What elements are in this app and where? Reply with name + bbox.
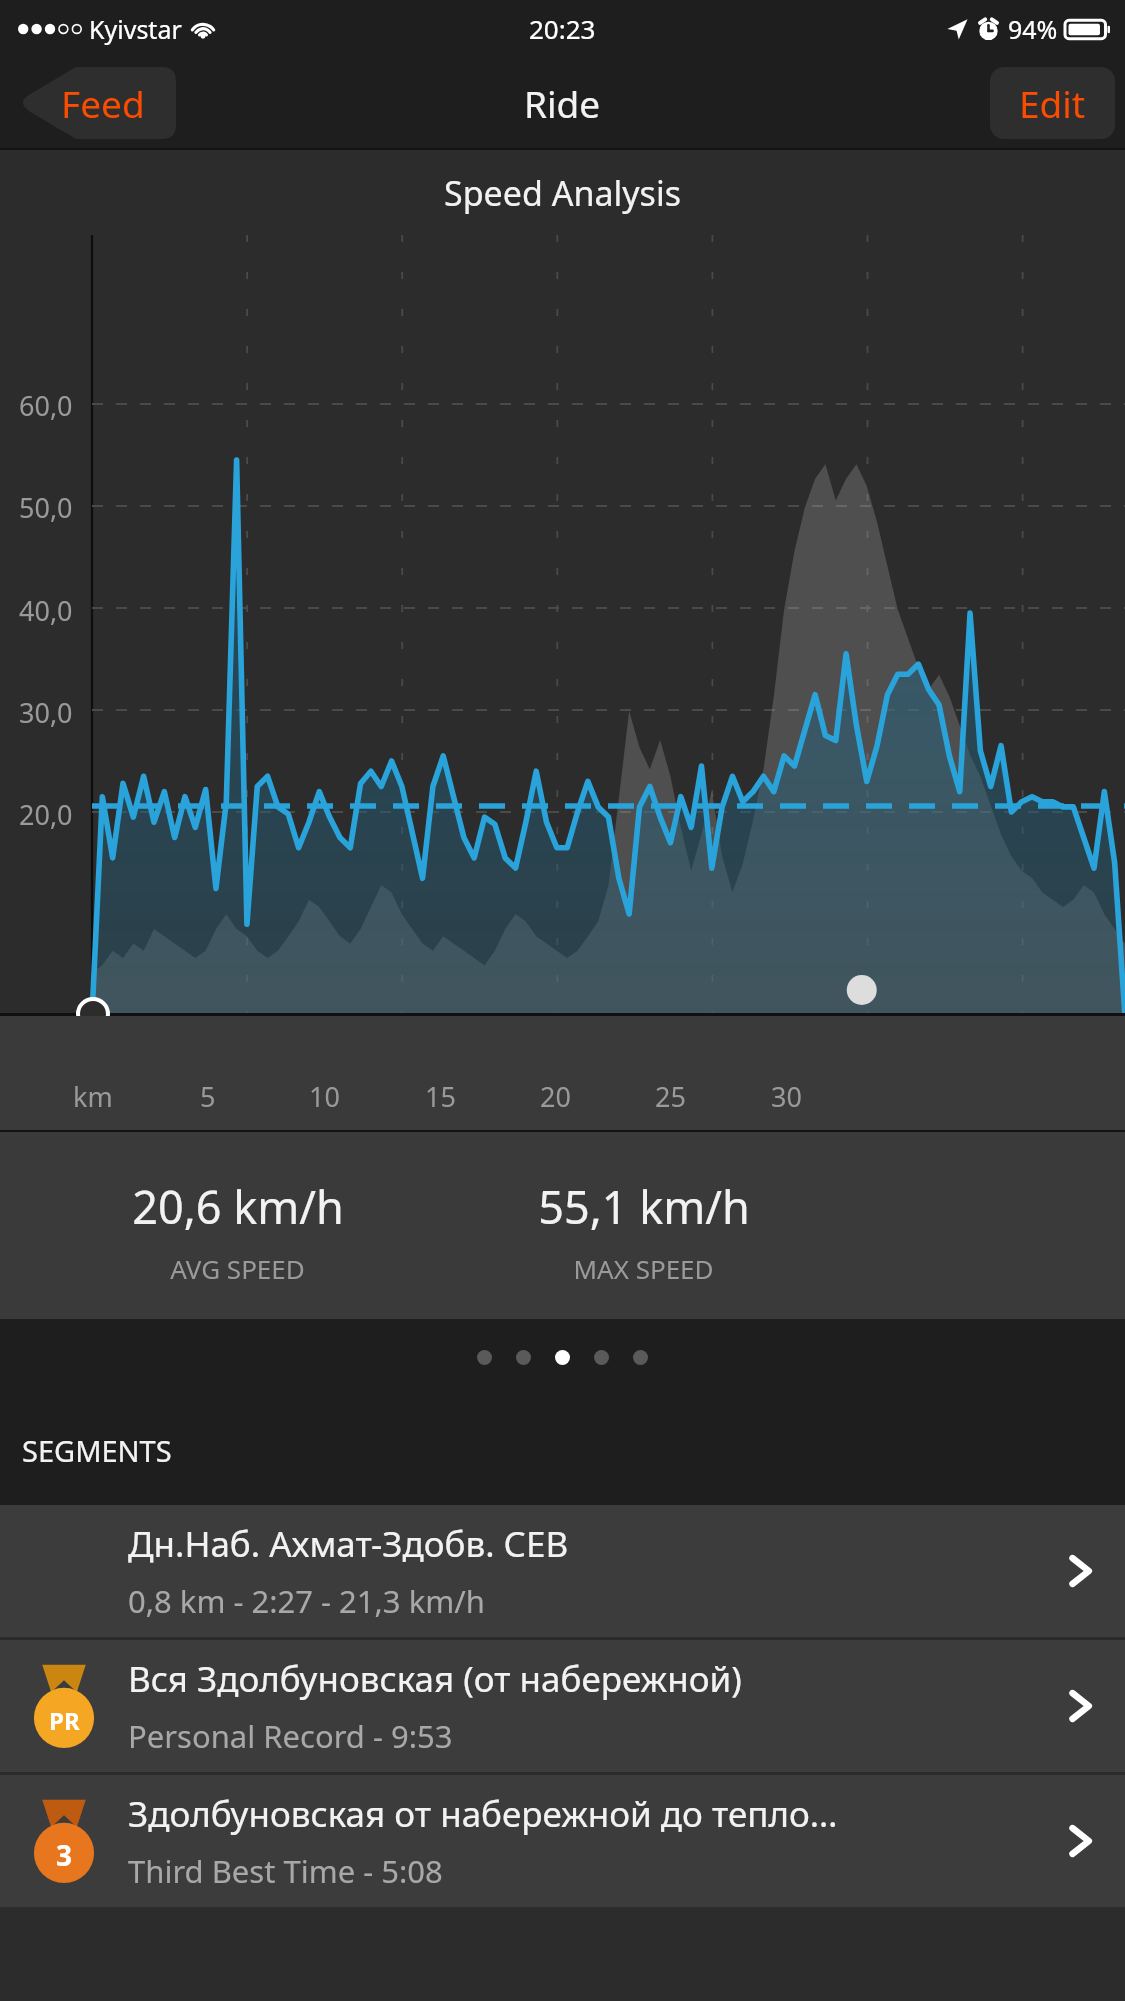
staticText: 20:23: [529, 11, 596, 46]
staticText: Вся Здолбуновская (от набережной): [128, 1655, 742, 1703]
staticText: Speed Analysis: [444, 170, 681, 216]
staticText: Дн.Наб. Ахмат-Здобв. СЕВ: [128, 1520, 569, 1568]
button[interactable]: [594, 1350, 609, 1365]
staticText: 10: [309, 1078, 340, 1115]
staticText: Здолбуновская от набережной до тепло…: [128, 1790, 838, 1838]
staticText: 50,0: [19, 489, 73, 526]
button[interactable]: Feed: [8, 67, 176, 139]
staticText: 20: [540, 1078, 571, 1115]
staticText: 40,0: [19, 592, 73, 629]
staticText: 0,8 km - 2:27 - 21,3 km/h: [128, 1580, 485, 1622]
staticText: 15: [425, 1078, 456, 1115]
staticText: 60,0: [19, 387, 73, 424]
staticText: SEGMENTS: [22, 1431, 172, 1470]
staticText: 25: [655, 1078, 686, 1115]
button[interactable]: PR: [0, 1640, 1125, 1772]
staticText: 30,0: [19, 694, 73, 731]
staticText: 55,1 km/h: [538, 1176, 750, 1237]
staticText: km: [73, 1078, 113, 1115]
staticText: Kyivstar: [89, 12, 182, 46]
staticText: Third Best Time - 5:08: [128, 1850, 443, 1892]
button[interactable]: [555, 1350, 570, 1365]
staticText: MAX SPEED: [573, 1251, 714, 1286]
button[interactable]: [516, 1350, 531, 1365]
button[interactable]: Дн.Наб. Ахмат-Здобв. СЕВ: [0, 1505, 1125, 1637]
staticText: Personal Record - 9:53: [128, 1715, 453, 1757]
staticText: 30: [771, 1078, 802, 1115]
button[interactable]: 3: [0, 1775, 1125, 1907]
staticText: 3: [56, 1836, 73, 1874]
button[interactable]: Edit: [990, 67, 1115, 139]
staticText: Edit: [1019, 78, 1086, 128]
staticText: 20,6 km/h: [132, 1176, 344, 1237]
staticText: 94%: [1008, 12, 1058, 46]
staticText: 5: [200, 1078, 216, 1115]
staticText: AVG SPEED: [170, 1251, 305, 1286]
staticText: PR: [49, 1704, 80, 1737]
staticText: 20,0: [19, 796, 73, 833]
button[interactable]: [633, 1350, 648, 1365]
staticText: Feed: [61, 78, 145, 128]
staticText: Ride: [524, 78, 601, 128]
button[interactable]: [477, 1350, 492, 1365]
